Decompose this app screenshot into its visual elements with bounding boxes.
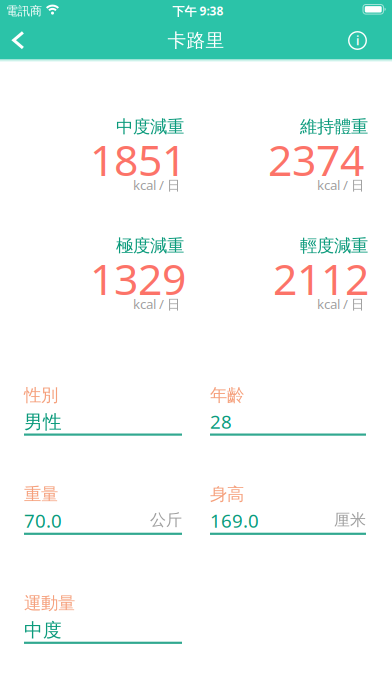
- button[interactable]: 年齡: [210, 384, 366, 436]
- staticText: 70.0: [24, 508, 62, 533]
- staticText: 1329: [90, 250, 186, 307]
- button[interactable]: i: [342, 25, 373, 56]
- staticText: 年齡: [210, 384, 244, 406]
- staticText: 重量: [24, 484, 58, 505]
- button[interactable]: [4, 25, 32, 55]
- staticText: 2112: [273, 250, 369, 307]
- staticText: 28: [210, 409, 232, 434]
- staticText: 男性: [24, 410, 62, 433]
- button[interactable]: 性別: [24, 384, 182, 436]
- button[interactable]: 運動量: [24, 593, 182, 645]
- staticText: kcal / 日: [133, 176, 180, 194]
- staticText: kcal / 日: [133, 295, 180, 313]
- staticText: kcal / 日: [317, 295, 364, 313]
- staticText: 中度: [24, 619, 62, 642]
- staticText: 極度減重: [116, 235, 184, 256]
- staticText: 公斤: [150, 510, 182, 530]
- staticText: 2374: [268, 131, 364, 188]
- staticText: 厘米: [334, 510, 366, 530]
- staticText: 性別: [24, 384, 58, 406]
- staticText: i: [356, 32, 359, 48]
- staticText: 運動量: [24, 593, 75, 614]
- button[interactable]: 身高: [210, 484, 366, 536]
- staticText: 身高: [210, 484, 244, 505]
- staticText: 輕度減重: [300, 235, 368, 256]
- staticText: 169.0: [210, 508, 259, 533]
- staticText: 電訊商: [6, 4, 42, 18]
- staticText: 維持體重: [300, 116, 368, 137]
- staticText: 下午 9:38: [172, 3, 223, 19]
- staticText: kcal / 日: [317, 176, 364, 194]
- staticText: 中度減重: [116, 116, 184, 137]
- staticText: 1851: [90, 131, 186, 188]
- button[interactable]: 重量: [24, 484, 182, 536]
- staticText: 卡路里: [167, 29, 224, 52]
